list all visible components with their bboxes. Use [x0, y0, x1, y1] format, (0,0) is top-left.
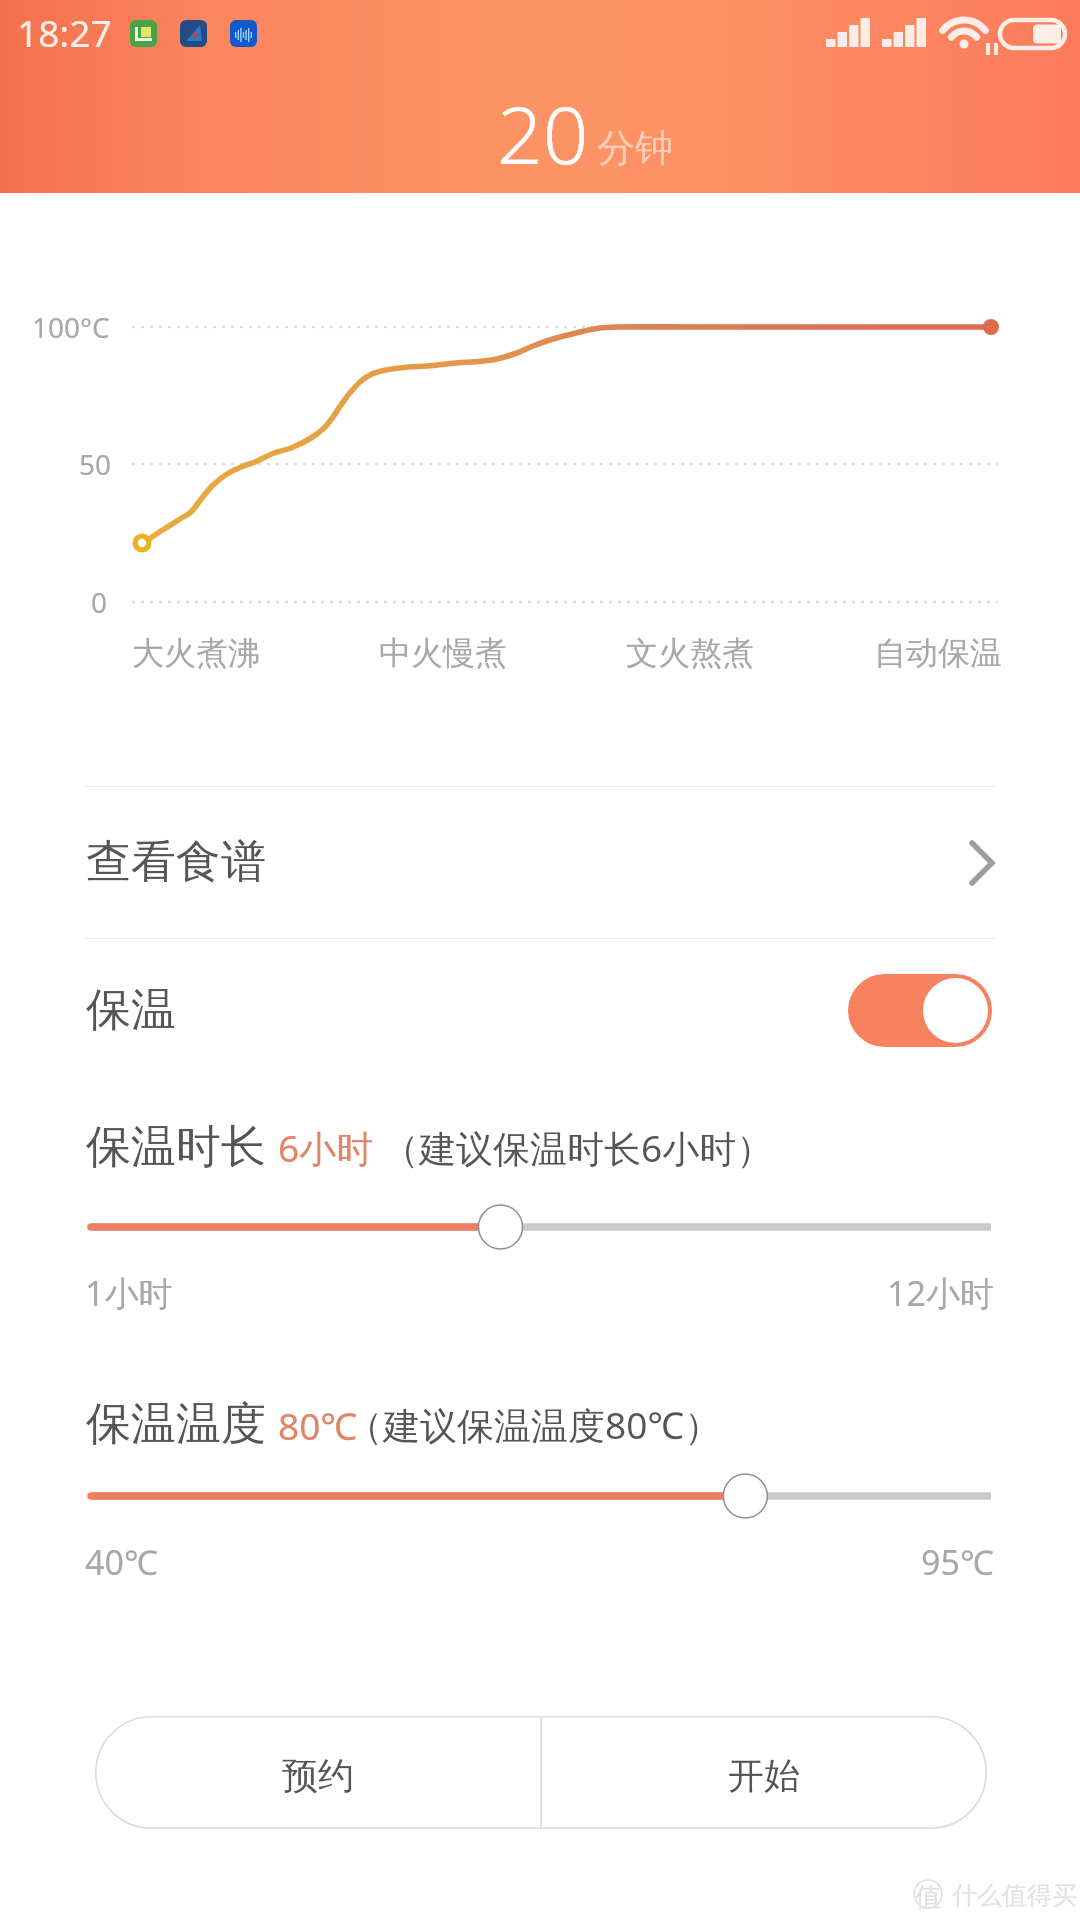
staticText: 值 [915, 1881, 941, 1914]
staticText: （建议保温时长6小时） [382, 1122, 774, 1173]
staticText: 自动保温 [858, 633, 1018, 673]
staticText: 20 [497, 78, 589, 187]
staticText: 保温温度 [86, 1396, 266, 1453]
staticText: 0 [91, 583, 108, 621]
staticText: （建议保温温度80℃） [346, 1399, 722, 1450]
staticText: 6小时 [278, 1122, 374, 1173]
staticText: 保温时长 [86, 1119, 266, 1176]
button[interactable]: Keep warm toggle, on [848, 974, 992, 1047]
staticText: 95℃ [921, 1539, 994, 1585]
button[interactable]: 保温温度滑块 80℃ [65, 1464, 1015, 1528]
staticText: 开始 [728, 1753, 800, 1798]
staticText: 1小时 [85, 1270, 173, 1316]
staticText: 12小时 [887, 1270, 994, 1316]
staticText: 文火熬煮 [610, 633, 770, 673]
staticText: 40℃ [85, 1539, 158, 1585]
button[interactable]: 查看食谱 [0, 787, 1080, 938]
staticText: 预约 [282, 1753, 354, 1798]
button[interactable]: 开始 [541, 1716, 987, 1829]
button[interactable]: 保温时长滑块 6小时 [65, 1195, 1015, 1259]
staticText: 大火煮沸 [116, 633, 276, 673]
staticText: 什么值得买 [952, 1880, 1077, 1911]
staticText: 80℃ [278, 1400, 358, 1450]
staticText: 查看食谱 [86, 834, 266, 891]
staticText: 50 [79, 445, 112, 483]
staticText: 分钟 [597, 124, 673, 172]
staticText: 保温 [86, 982, 176, 1039]
button[interactable]: 预约 [95, 1716, 541, 1829]
staticText: 100°C [32, 308, 110, 346]
staticText: 18:27 [17, 7, 112, 57]
button[interactable]: 保温 [0, 939, 1080, 1082]
staticText: 中火慢煮 [363, 633, 523, 673]
